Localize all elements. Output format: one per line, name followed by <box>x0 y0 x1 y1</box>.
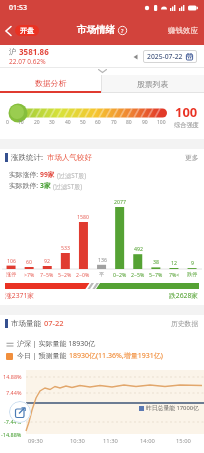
staticText: -14.88% <box>1 431 22 438</box>
button[interactable] <box>9 401 31 423</box>
staticText: 开盘 <box>20 26 34 35</box>
staticText: 40 <box>65 119 71 126</box>
staticText: 沪 <box>9 47 16 56</box>
staticText: 数据分析 <box>35 78 67 88</box>
staticText: 市场量能 <box>11 319 41 328</box>
staticText: 1580 <box>77 213 89 220</box>
staticText: 跌停 <box>187 271 198 278</box>
staticText: 136 <box>98 256 107 263</box>
staticText: 80 <box>126 119 132 126</box>
staticText: 533 <box>61 244 70 251</box>
staticText: 60 <box>26 258 32 265</box>
staticText: 跌2628家 <box>169 291 199 300</box>
staticText: (过滤ST股) <box>53 182 83 190</box>
staticText: 3581.86 <box>19 46 49 57</box>
staticText: 实际跌停: <box>9 181 40 190</box>
staticText: 2077 <box>114 198 126 205</box>
staticText: 70 <box>111 119 117 126</box>
staticText: 市场情绪 <box>77 24 115 36</box>
staticText: 100 <box>175 103 198 121</box>
staticText: 沪深 | 实际量能 18930亿 <box>17 339 96 349</box>
staticText: 07-22 <box>44 318 64 328</box>
staticText: 11:30 <box>103 437 118 445</box>
staticText: 3家 <box>40 181 53 190</box>
staticText: 股票列表 <box>137 79 169 89</box>
staticText: 市场人气较好 <box>47 153 92 162</box>
staticText: 14.88% <box>3 373 22 380</box>
staticText: 20 <box>34 119 40 126</box>
staticText: 106 <box>7 257 16 264</box>
staticText: 12 <box>171 259 177 266</box>
staticText: 涨跌统计: <box>11 152 44 162</box>
staticText: 92 <box>44 257 50 264</box>
staticText: 平 <box>99 271 105 278</box>
staticText: 50 <box>80 119 86 126</box>
staticText: -7.44% <box>4 418 22 425</box>
staticText: 2025-07-22 <box>147 52 183 61</box>
staticText: 15:00 <box>176 437 191 445</box>
staticText: 7%< <box>169 271 180 278</box>
staticText: ? <box>121 27 124 34</box>
staticText: 22.07 0.62% <box>9 57 46 66</box>
staticText: (过滤ST股) <box>57 171 87 179</box>
staticText: 10:30 <box>70 437 85 445</box>
staticText: 492 <box>134 245 143 252</box>
staticText: 涨停 <box>6 271 17 278</box>
button[interactable]: 历史数据 <box>171 319 199 328</box>
staticText: 14:00 <box>140 437 155 445</box>
staticText: >7% <box>24 271 35 278</box>
staticText: 涨2371家 <box>5 291 35 300</box>
staticText: 2~0% <box>76 271 90 278</box>
button[interactable]: 赚钱效应 <box>168 26 198 35</box>
staticText: 综合强度 <box>174 121 199 129</box>
staticText: 100 <box>157 119 166 126</box>
staticText: 9 <box>191 259 194 266</box>
staticText: 09:30 <box>28 437 43 445</box>
staticText: 今日 | 预测量能 <box>17 351 69 361</box>
staticText: 7~5% <box>40 271 54 278</box>
button[interactable]: 更多 <box>185 153 199 162</box>
staticText: 60 <box>95 119 101 126</box>
staticText: 昨日总量能 17000亿 <box>146 404 199 412</box>
button[interactable]: 数据分析 <box>0 75 101 93</box>
staticText: 5~2% <box>58 271 72 278</box>
staticText: 10 <box>18 119 24 126</box>
button[interactable]: 开盘 <box>15 25 39 36</box>
staticText: 18930亿(11.36%,增量1931亿) <box>69 351 163 361</box>
staticText: 38 <box>153 258 159 265</box>
staticText: 90 <box>142 119 148 126</box>
staticText: 7.44% <box>6 389 22 396</box>
staticText: 0 <box>6 119 9 126</box>
staticText: 99家 <box>40 170 57 179</box>
button[interactable]: 股票列表 <box>102 75 204 93</box>
staticText: 实际涨停: <box>9 170 40 179</box>
staticText: 30 <box>49 119 55 126</box>
staticText: 2~5% <box>131 271 145 278</box>
button[interactable] <box>5 26 12 36</box>
staticText: 0~2% <box>113 271 127 278</box>
button[interactable]: 2025-07-22 <box>143 50 197 63</box>
staticText: 01:53 <box>9 3 27 13</box>
staticText: 5~7% <box>149 271 163 278</box>
